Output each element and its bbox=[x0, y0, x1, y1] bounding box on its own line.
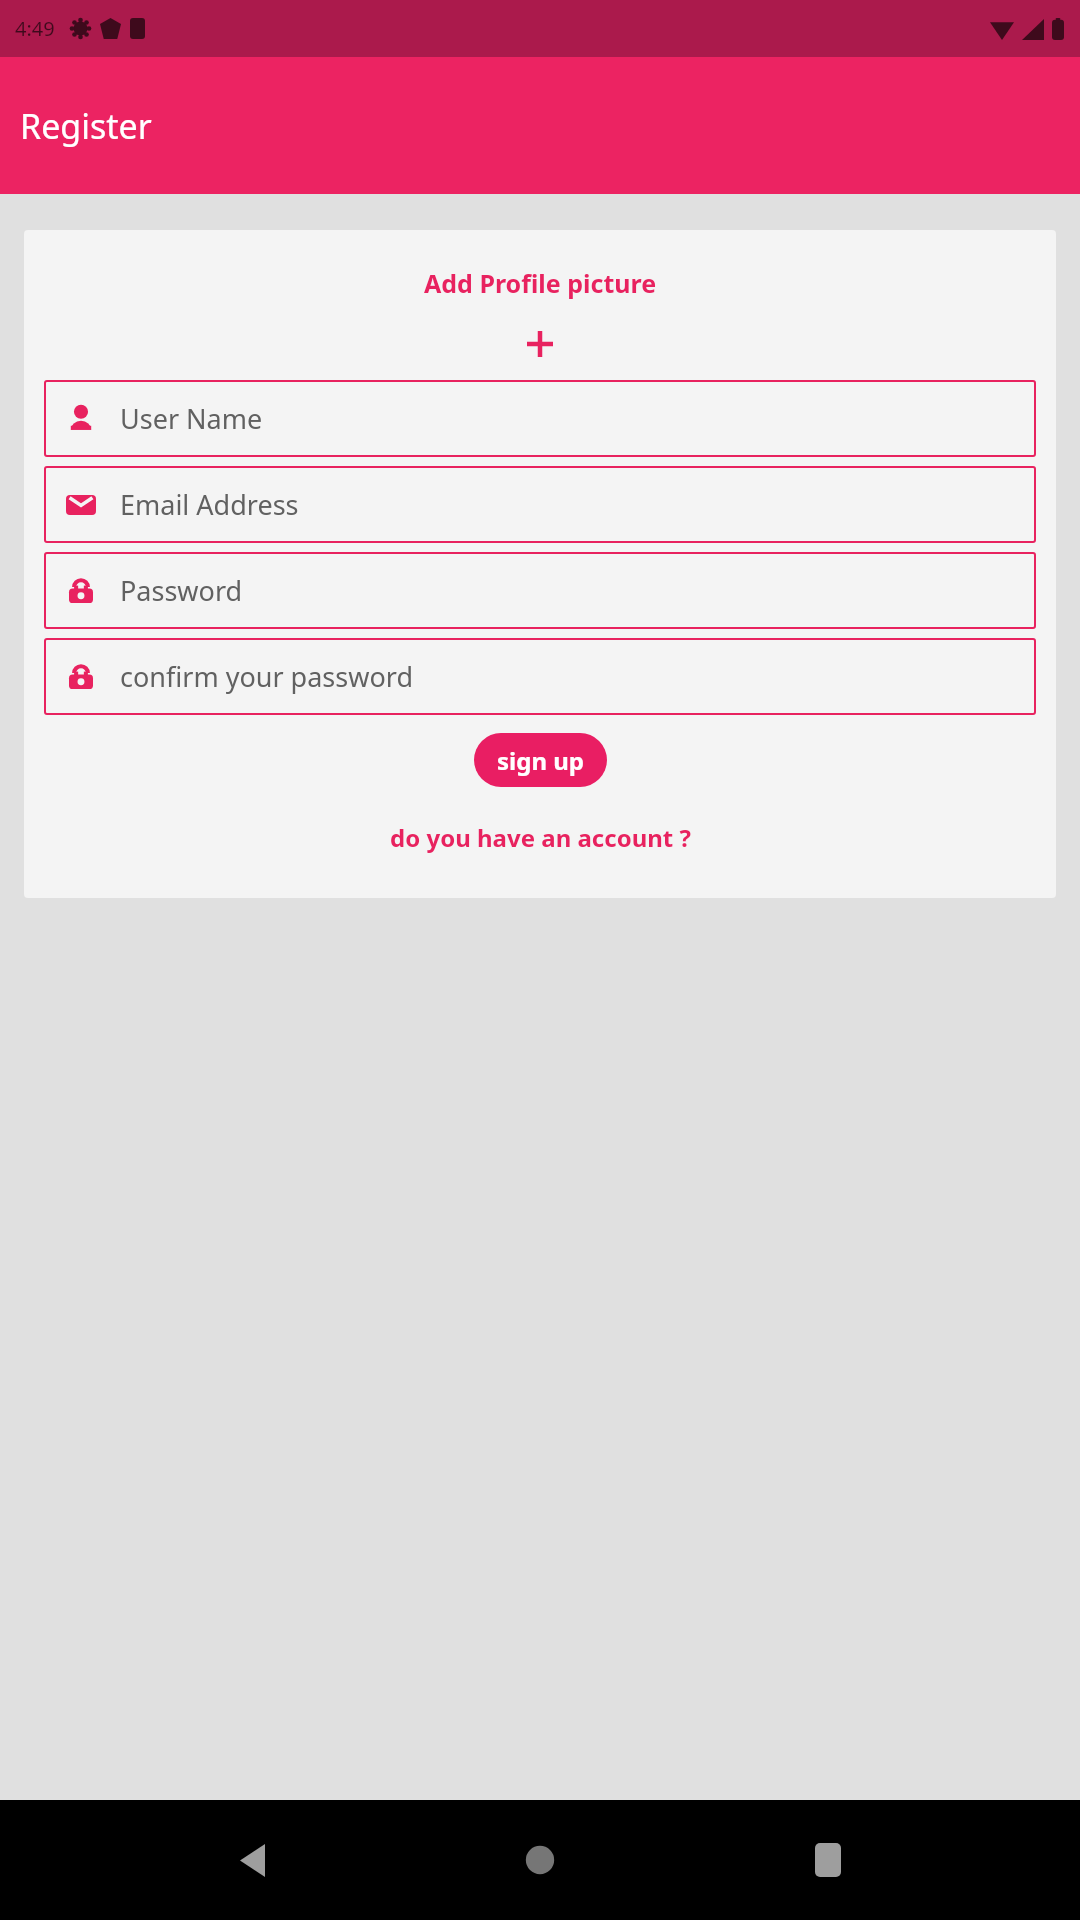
button[interactable]: Back bbox=[216, 1824, 288, 1896]
button[interactable]: Email Address bbox=[44, 466, 1036, 543]
button[interactable]: confirm your password bbox=[44, 638, 1036, 715]
staticText: sign up bbox=[497, 744, 584, 777]
button[interactable]: Add profile picture bbox=[518, 322, 562, 366]
button[interactable]: Home bbox=[504, 1824, 576, 1896]
staticText: Add Profile picture bbox=[424, 266, 657, 300]
staticText: User Name bbox=[120, 400, 263, 437]
button[interactable]: do you have an account ? bbox=[378, 817, 703, 858]
staticText: do you have an account ? bbox=[390, 821, 691, 854]
staticText: Email Address bbox=[120, 486, 299, 523]
button[interactable]: Add Profile picture bbox=[412, 262, 669, 304]
button[interactable]: Recent apps bbox=[792, 1824, 864, 1896]
staticText: Password bbox=[120, 572, 243, 609]
button[interactable]: sign up bbox=[474, 733, 607, 787]
staticText: confirm your password bbox=[120, 658, 414, 695]
button[interactable]: User Name bbox=[44, 380, 1036, 457]
staticText: Register bbox=[20, 103, 152, 149]
button[interactable]: Password bbox=[44, 552, 1036, 629]
staticText: 4:49 bbox=[15, 15, 55, 42]
